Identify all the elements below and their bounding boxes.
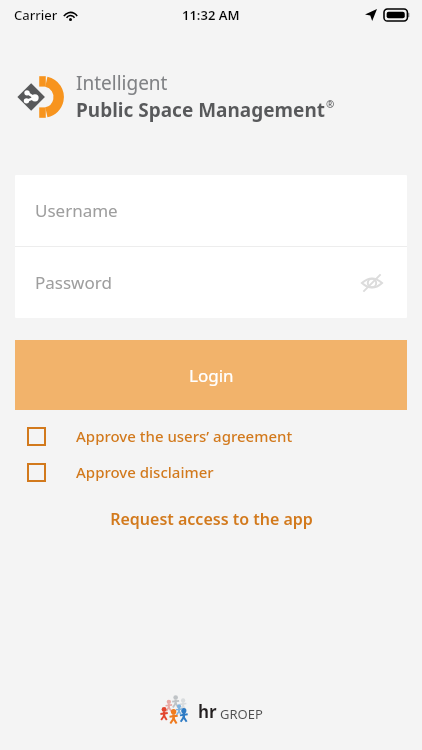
- staticText: hr: [198, 700, 217, 723]
- button[interactable]: Request access to the app: [98, 504, 325, 534]
- staticText: Carrier: [14, 6, 58, 24]
- staticText: Public Space Management: [76, 97, 326, 123]
- staticText: Approve the users’ agreement: [76, 426, 293, 446]
- button[interactable]: Approve the users’ agreement: [0, 424, 422, 448]
- button[interactable]: Username: [15, 175, 407, 246]
- staticText: Intelligent: [76, 70, 168, 96]
- button[interactable]: Approve disclaimer: [0, 460, 422, 484]
- staticText: Login: [189, 364, 234, 387]
- button[interactable]: Password: [15, 247, 407, 318]
- staticText: Approve disclaimer: [76, 462, 214, 482]
- button[interactable]: Login: [15, 340, 407, 410]
- staticText: Username: [35, 199, 118, 222]
- button[interactable]: Show password: [357, 268, 387, 298]
- staticText: GROEP: [220, 705, 263, 723]
- staticText: Request access to the app: [110, 508, 313, 530]
- staticText: 11:32 AM: [182, 6, 240, 24]
- staticText: ®: [326, 97, 335, 111]
- staticText: Password: [35, 271, 112, 294]
